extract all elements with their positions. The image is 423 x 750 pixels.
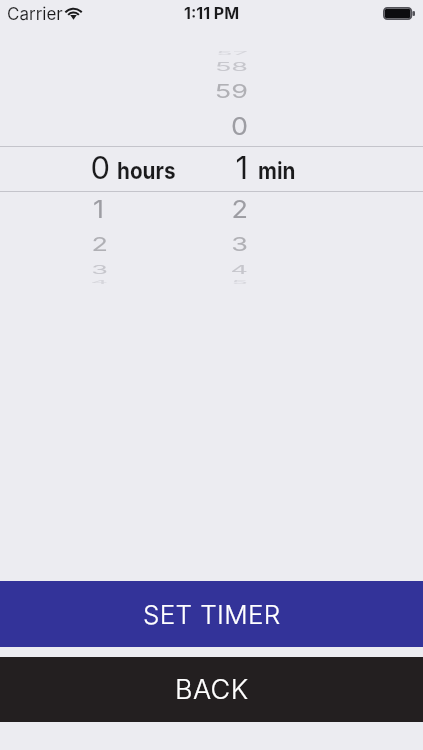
staticText: BACK (175, 673, 249, 706)
staticText: SET TIMER (143, 599, 281, 630)
button[interactable]: SET TIMER (0, 581, 423, 647)
staticText: 4 (60, 280, 108, 286)
button[interactable]: BACK (0, 657, 423, 722)
staticText: 1:11 PM (184, 3, 240, 22)
staticText: 4 (200, 263, 248, 277)
staticText: 2 (200, 195, 248, 224)
staticText: Carrier (7, 4, 63, 25)
staticText: 5 (200, 280, 248, 286)
staticText: 2 (60, 233, 108, 256)
staticText: 3 (60, 263, 108, 277)
staticText: 3 (200, 233, 248, 256)
staticText: 0 (200, 112, 248, 141)
other: Battery (383, 7, 415, 20)
staticText: 1 (200, 149, 248, 187)
other: Wi-Fi (65, 7, 82, 19)
staticText: 59 (200, 80, 248, 103)
staticText: 0 (62, 149, 110, 187)
staticText: 58 (200, 60, 248, 74)
staticText: min (258, 156, 296, 184)
staticText: 57 (200, 51, 248, 57)
staticText: 1 (56, 195, 104, 224)
staticText: hours (117, 156, 176, 184)
